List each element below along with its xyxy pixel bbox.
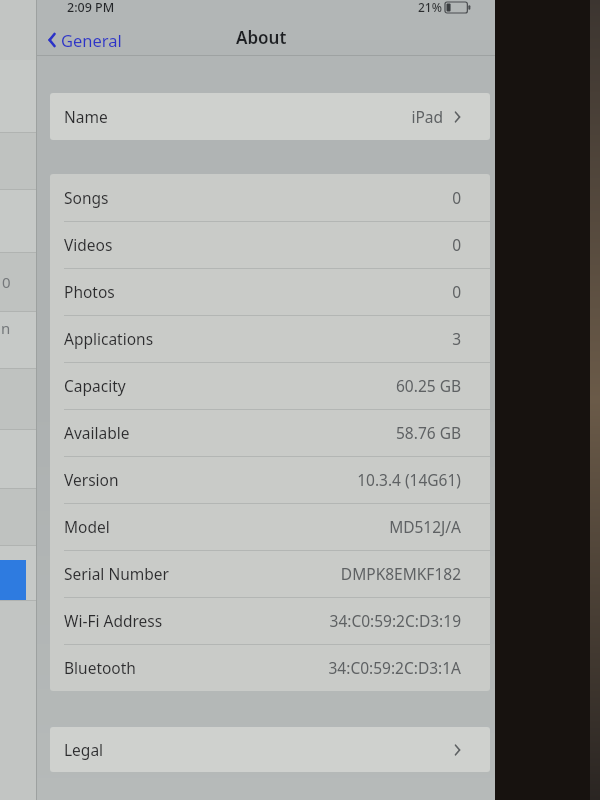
button[interactable]: Videos [50,221,490,268]
staticText: General [61,29,122,51]
button[interactable]: General [45,27,122,53]
staticText: Bluetooth [64,657,136,678]
staticText: iPad [411,106,443,127]
button[interactable]: Bluetooth [50,644,490,691]
button[interactable]: Capacity [50,362,490,409]
staticText: 34:C0:59:2C:D3:19 [329,610,461,631]
staticText: DMPK8EMKF182 [340,563,461,584]
staticText: 0 [2,272,11,292]
staticText: Applications [64,328,154,349]
staticText: 10.3.4 (14G61) [357,469,461,490]
staticText: 0 [452,234,461,255]
button[interactable]: Available [50,409,490,456]
staticText: Name [64,106,108,127]
staticText: Capacity [64,375,126,396]
staticText: Available [64,422,130,443]
button[interactable]: Serial Number [50,550,490,597]
staticText: 2:09 PM [67,0,115,16]
button[interactable]: Applications [50,315,490,362]
staticText: 21% [418,0,442,15]
staticText: 34:C0:59:2C:D3:1A [328,657,461,678]
staticText: Legal [64,739,104,760]
staticText: Photos [64,281,115,302]
staticText: About [236,26,287,49]
staticText: MD512J/A [389,516,461,537]
button[interactable]: Photos [50,268,490,315]
staticText: Model [64,516,110,537]
button[interactable]: Wi-Fi Address [50,597,490,644]
staticText: Version [64,469,119,490]
button[interactable]: Songs [50,174,490,221]
staticText: Serial Number [64,563,169,584]
staticText: 60.25 GB [395,375,461,396]
staticText: 0 [452,281,461,302]
staticText: Wi-Fi Address [64,610,163,631]
staticText: Videos [64,234,113,255]
button[interactable]: Version [50,456,490,503]
staticText: 3 [452,328,461,349]
button[interactable]: Legal [50,727,490,772]
staticText: 58.76 GB [395,422,461,443]
button[interactable]: Name [50,93,490,140]
staticText: 0 [452,187,461,208]
button[interactable]: Model [50,503,490,550]
staticText: Songs [64,187,109,208]
staticText: n [1,318,11,338]
